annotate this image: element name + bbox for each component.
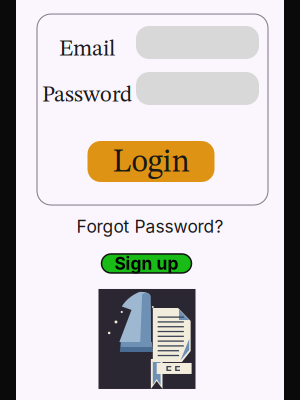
staticText: Forgot Password? <box>76 216 223 237</box>
staticText: Sign up <box>114 253 178 274</box>
staticText: Login <box>112 147 189 179</box>
button[interactable]: Login <box>87 141 214 182</box>
button[interactable]: Forgot Password? <box>70 214 229 239</box>
staticText: Password <box>42 84 132 107</box>
staticText: Email <box>59 38 115 61</box>
button[interactable]: Sign up <box>101 254 191 273</box>
